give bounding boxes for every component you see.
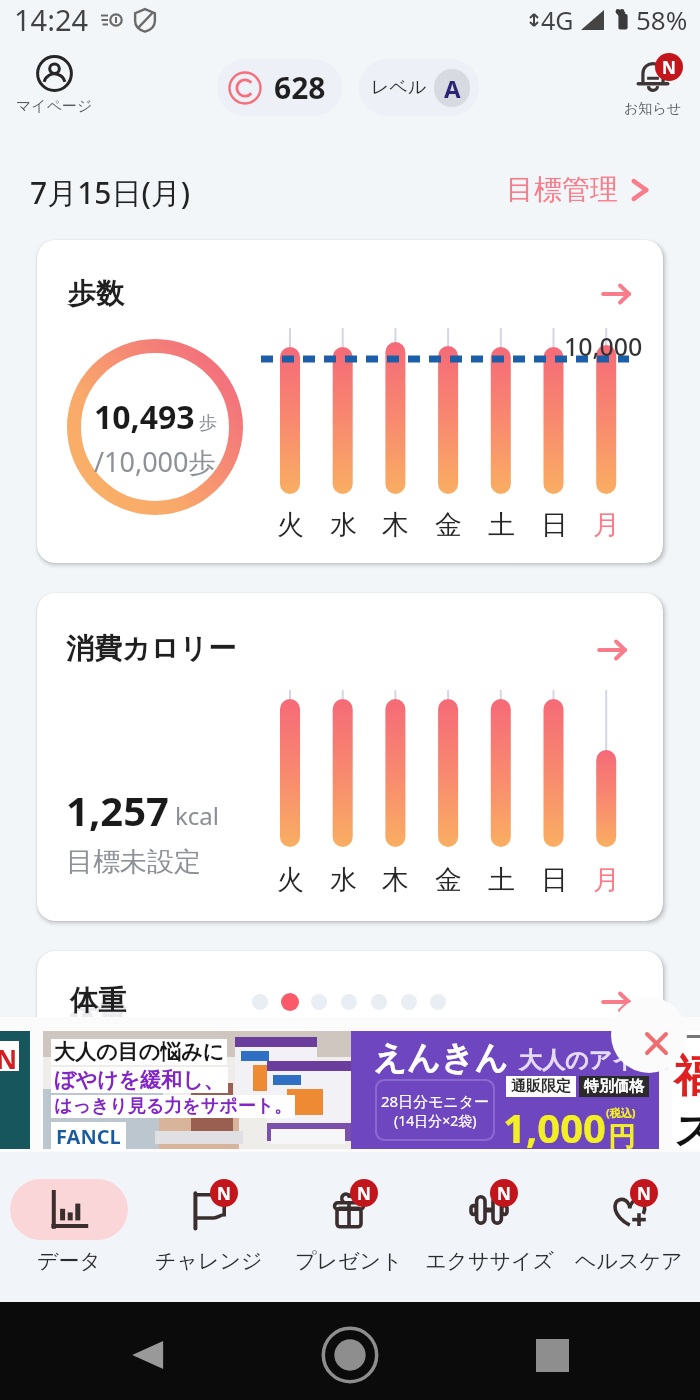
- staticText: えんきん: [373, 1037, 509, 1079]
- staticText: 通販限定: [511, 1077, 571, 1096]
- staticText: 月: [593, 863, 620, 897]
- staticText: 目標未設定: [66, 845, 201, 879]
- staticText: 日: [541, 863, 568, 897]
- button[interactable]: ホーム: [321, 1326, 379, 1384]
- staticText: 628: [274, 67, 326, 108]
- staticText: 体重: [70, 983, 126, 1018]
- staticText: 火: [277, 863, 304, 897]
- staticText: 月: [593, 508, 620, 542]
- staticText: N: [662, 56, 676, 79]
- staticText: 目標管理: [506, 172, 618, 207]
- staticText: レベル: [371, 76, 427, 99]
- staticText: kcal: [175, 799, 219, 832]
- other: エクササイズ: [469, 1190, 509, 1230]
- staticText: 土: [488, 863, 515, 897]
- button[interactable]: 消費カロリー: [37, 593, 663, 921]
- button[interactable]: 閉じる: [611, 997, 687, 1073]
- staticText: 福: [674, 1049, 700, 1104]
- staticText: マイページ: [16, 97, 93, 116]
- staticText: 火: [277, 508, 304, 542]
- button[interactable]: お知らせ: [614, 53, 691, 121]
- staticText: 木: [382, 863, 409, 897]
- staticText: (14日分×2袋): [394, 1111, 477, 1130]
- staticText: 7月15日(月): [30, 172, 191, 213]
- staticText: N: [497, 1182, 511, 1205]
- staticText: 金: [435, 508, 462, 542]
- staticText: 10,000: [564, 329, 643, 363]
- staticText: 4G: [541, 3, 574, 37]
- staticText: 土: [488, 508, 515, 542]
- staticText: 歩: [199, 412, 217, 435]
- staticText: はっきり見る力をサポート。: [54, 1095, 292, 1118]
- button[interactable]: 詳細: [595, 633, 629, 667]
- button[interactable]: 目標管理: [498, 168, 661, 211]
- staticText: 大人の目の悩みに: [54, 1039, 224, 1065]
- button[interactable]: ヘルスケア: [559, 1152, 699, 1302]
- button[interactable]: 体重: [37, 951, 663, 1071]
- staticText: ぼやけを緩和し、: [54, 1067, 225, 1093]
- button[interactable]: 戻る: [130, 1339, 166, 1371]
- button[interactable]: エクササイズ: [419, 1152, 559, 1302]
- staticText: 水: [330, 508, 357, 542]
- staticText: /10,000歩: [94, 443, 216, 480]
- other: プレゼント: [329, 1190, 369, 1230]
- staticText: 大人のアイケア: [519, 1046, 683, 1075]
- staticText: A: [444, 72, 461, 105]
- staticText: ヘルスケア: [575, 1248, 683, 1274]
- staticText: N: [0, 1041, 18, 1071]
- staticText: N: [357, 1182, 371, 1205]
- staticText: 金: [435, 863, 462, 897]
- button[interactable]: 詳細: [599, 985, 633, 1019]
- staticText: 消費カロリー: [66, 631, 236, 666]
- staticText: プレゼント: [295, 1248, 403, 1274]
- staticText: データ: [37, 1248, 101, 1274]
- staticText: 1,000: [503, 1100, 606, 1154]
- button[interactable]: データ: [0, 1152, 139, 1302]
- staticText: 特別価格: [584, 1077, 644, 1096]
- staticText: 14:24: [14, 0, 89, 39]
- other: データ: [49, 1190, 89, 1230]
- staticText: 1,257: [66, 783, 169, 837]
- button[interactable]: 歩数: [37, 240, 663, 563]
- staticText: FANCL: [56, 1123, 121, 1150]
- staticText: 円: [608, 1120, 635, 1154]
- staticText: エクササイズ: [425, 1248, 554, 1274]
- button[interactable]: 詳細: [599, 277, 633, 311]
- button[interactable]: 大人の目の悩みに: [43, 1031, 659, 1149]
- staticText: 10,493: [94, 395, 195, 439]
- staticText: 28日分モニター: [381, 1091, 490, 1111]
- staticText: ス: [674, 1105, 700, 1155]
- staticText: 歩数: [68, 276, 124, 311]
- staticText: 水: [330, 863, 357, 897]
- staticText: N: [217, 1182, 231, 1205]
- staticText: 58%: [636, 2, 688, 37]
- staticText: 体重: [70, 999, 126, 1034]
- staticText: 日: [541, 508, 568, 542]
- button[interactable]: 628: [217, 59, 342, 116]
- button[interactable]: レベル: [359, 59, 479, 116]
- staticText: N: [637, 1182, 651, 1205]
- button[interactable]: マイページ: [8, 51, 101, 120]
- staticText: 木: [382, 508, 409, 542]
- button[interactable]: チャレンジ: [139, 1152, 279, 1302]
- button[interactable]: プレゼント: [279, 1152, 419, 1302]
- staticText: チャレンジ: [155, 1248, 263, 1274]
- other: ヘルスケア: [609, 1190, 649, 1230]
- staticText: (税込): [606, 1105, 636, 1120]
- staticText: お知らせ: [624, 100, 681, 118]
- other: チャレンジ: [189, 1190, 229, 1230]
